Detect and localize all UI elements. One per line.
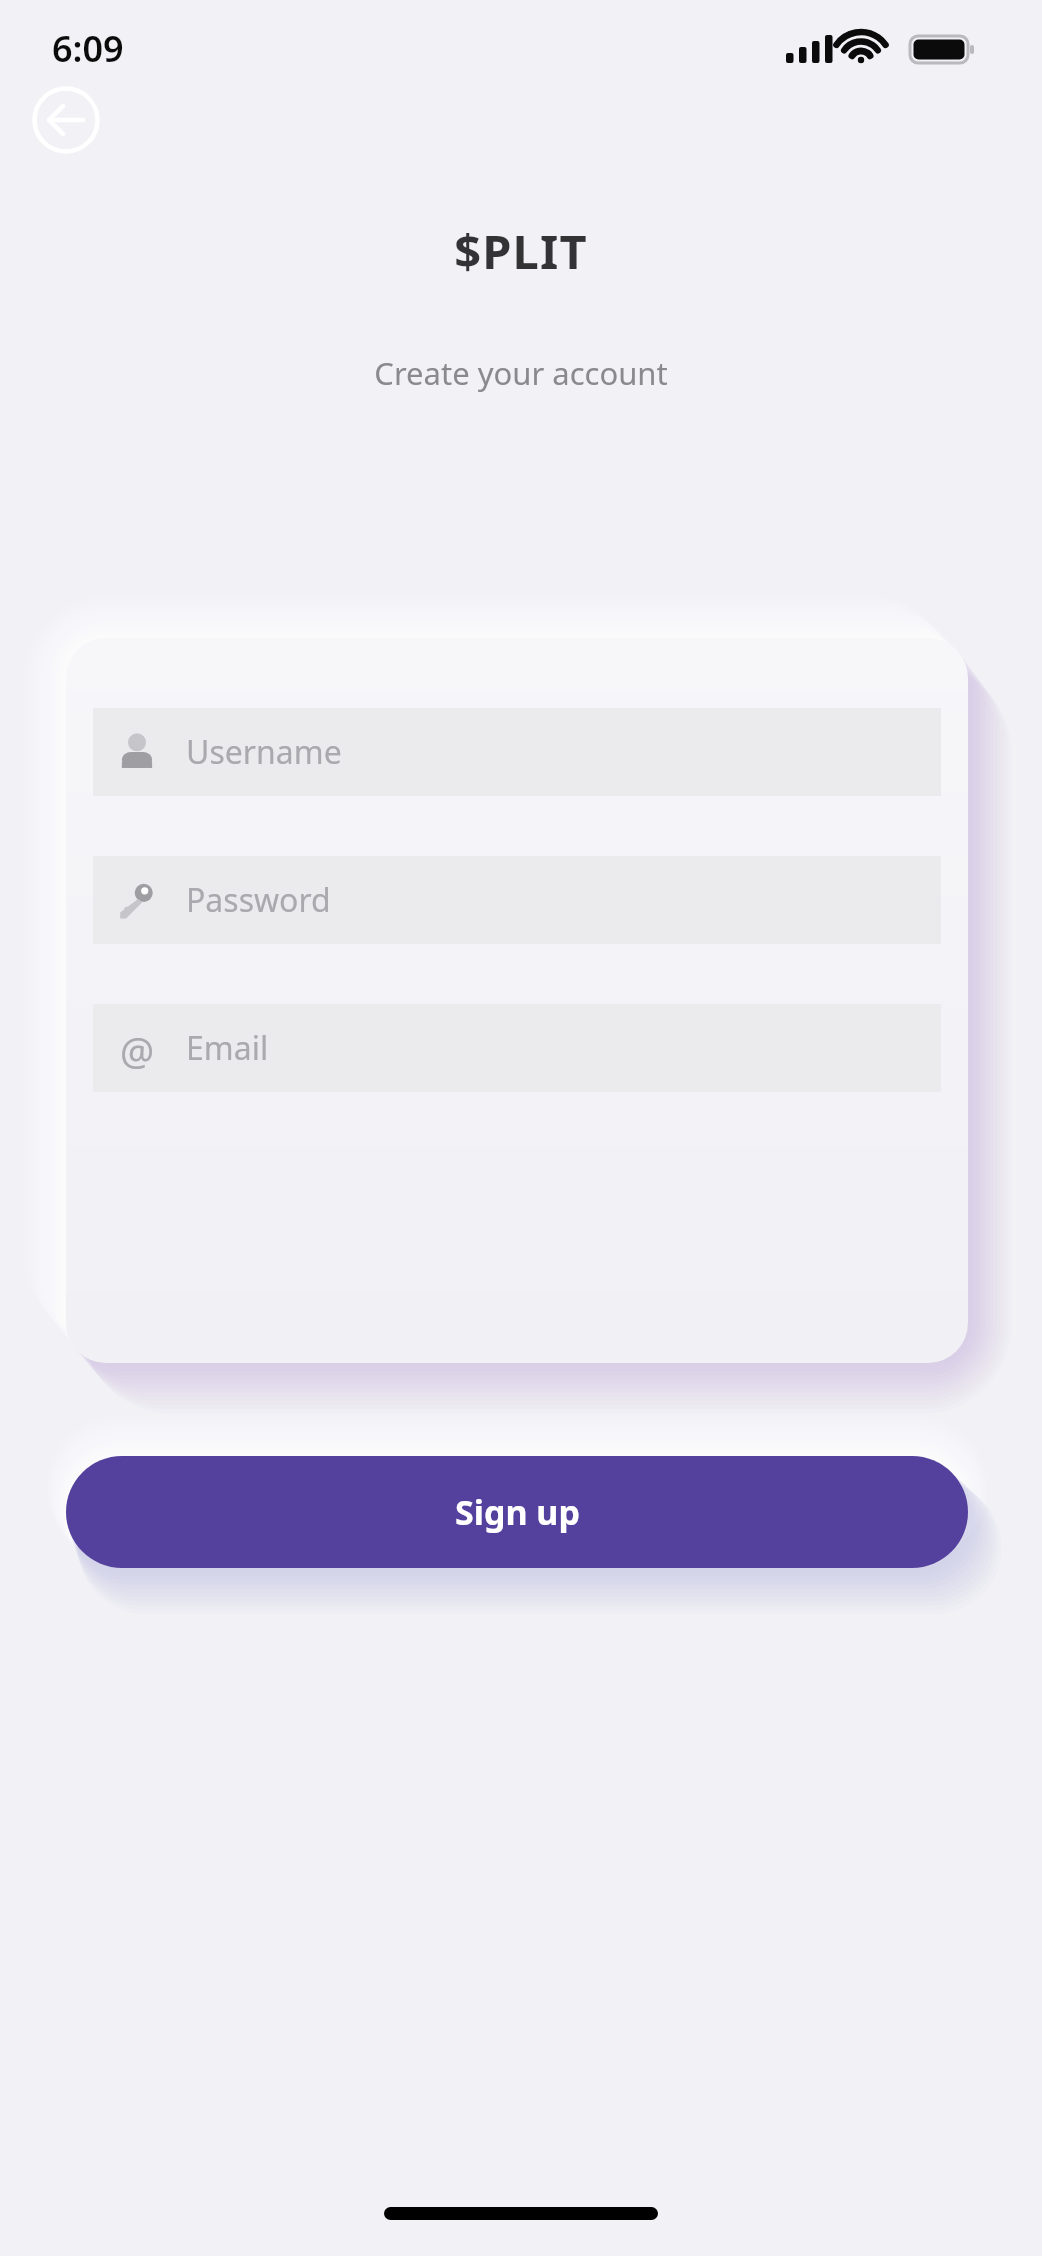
staticText: Sign up bbox=[455, 1489, 580, 1535]
staticText: 6:09 bbox=[52, 24, 124, 73]
button[interactable]: Username bbox=[93, 708, 941, 796]
staticText: Create your account bbox=[374, 352, 668, 394]
button[interactable]: Password bbox=[93, 856, 941, 944]
button[interactable]: Sign up bbox=[66, 1456, 968, 1568]
button[interactable]: Back bbox=[32, 86, 100, 154]
staticText: Password bbox=[186, 878, 331, 922]
staticText: @ bbox=[120, 1024, 155, 1072]
staticText: Email bbox=[186, 1026, 269, 1070]
staticText: Username bbox=[186, 730, 342, 774]
staticText: $PLIT bbox=[454, 219, 588, 283]
button[interactable]: @ bbox=[93, 1004, 941, 1092]
